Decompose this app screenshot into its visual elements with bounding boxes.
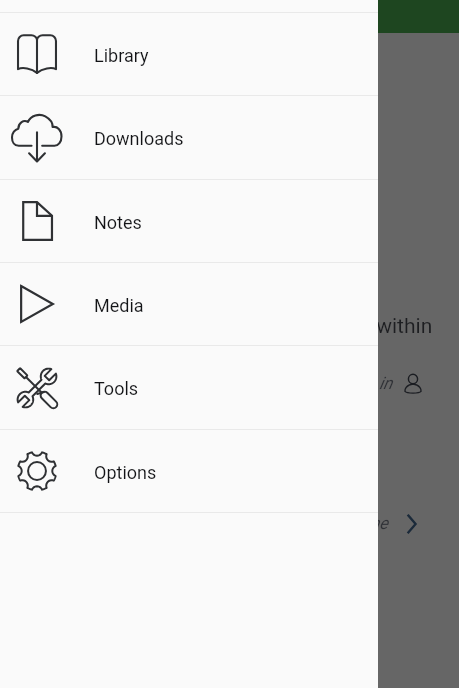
staticText: Done	[350, 513, 389, 533]
staticText: Everything within	[274, 314, 433, 339]
button[interactable]: Account	[404, 373, 422, 394]
button[interactable]: Next	[406, 514, 418, 534]
button[interactable]: Options	[0, 430, 378, 512]
button[interactable]: Library	[0, 13, 378, 95]
button[interactable]: Media	[0, 263, 378, 345]
staticText: Notes	[94, 212, 142, 233]
staticText: Options	[94, 462, 157, 483]
staticText: Library	[94, 45, 149, 66]
staticText: Tools	[94, 378, 139, 399]
staticText: Sign in	[343, 373, 393, 393]
button[interactable]: Tools	[0, 346, 378, 429]
staticText: Media	[94, 295, 144, 316]
staticText: Downloads	[94, 128, 184, 149]
button[interactable]: Notes	[0, 180, 378, 262]
button[interactable]: Downloads	[0, 96, 378, 179]
